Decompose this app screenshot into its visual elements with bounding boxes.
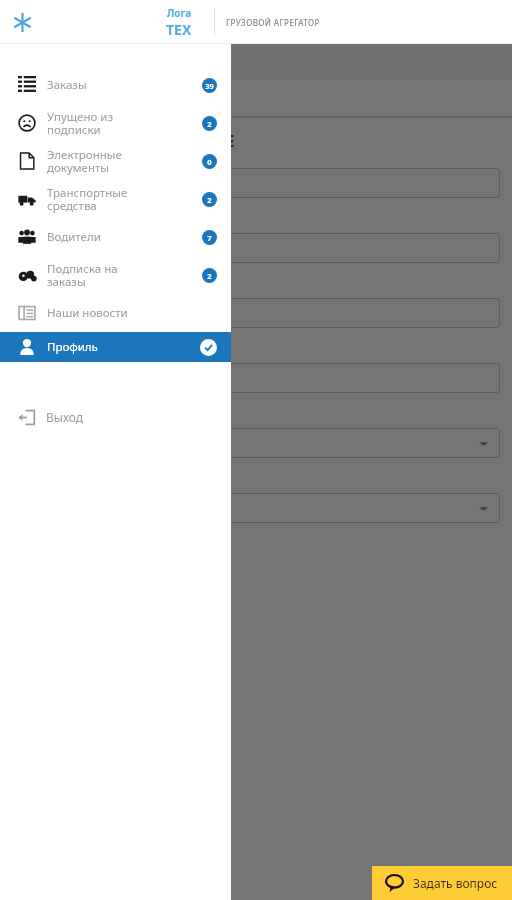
button[interactable] [12, 168, 500, 198]
button[interactable]: Профиль [0, 332, 231, 362]
staticText: Лога [167, 6, 192, 20]
button[interactable]: Водители [0, 218, 231, 256]
button[interactable]: Заказы [0, 66, 231, 104]
button[interactable]: Меню [6, 6, 38, 38]
button[interactable]: Электронные документы [0, 142, 231, 180]
button[interactable]: Упущено из подписки [0, 104, 231, 142]
staticText: Задать вопрос [413, 875, 498, 891]
staticText: 7 [207, 233, 212, 243]
button[interactable] [12, 298, 500, 328]
button[interactable]: Выход [0, 402, 231, 432]
staticText: 0 [207, 157, 212, 167]
button[interactable] [12, 493, 500, 523]
staticText: Подписка на заказы [47, 261, 202, 290]
staticText: Упущено из подписки [47, 109, 202, 138]
button[interactable]: Транспортные средства [0, 180, 231, 218]
button[interactable]: Наши новости [0, 294, 231, 332]
staticText: Профиль [47, 339, 200, 355]
button[interactable] [12, 363, 500, 393]
staticText: ГРУЗОВОЙ АГРЕГАТОР [226, 17, 320, 28]
staticText: 2 [207, 195, 212, 205]
staticText: Выход [46, 409, 84, 425]
staticText: 2 [207, 271, 212, 281]
button[interactable] [12, 233, 500, 263]
staticText: ДАННЫЕ О ПОЛЬЗОВАТЕЛЕ [14, 130, 235, 152]
button[interactable]: Подписка на заказы [0, 256, 231, 294]
staticText: 39 [205, 81, 214, 91]
staticText: ТЕХ [166, 20, 192, 39]
button[interactable] [12, 428, 500, 458]
staticText: Заказы [47, 77, 202, 93]
staticText: Электронные документы [47, 147, 202, 176]
button[interactable]: Сменить пароль [129, 91, 225, 107]
button[interactable]: О пользователе [14, 91, 107, 107]
staticText: Наши новости [47, 305, 217, 321]
staticText: Транспортные средства [47, 185, 202, 214]
button[interactable]: Задать вопрос [372, 866, 512, 900]
staticText: 2 [207, 119, 212, 129]
staticText: Водители [47, 229, 202, 245]
